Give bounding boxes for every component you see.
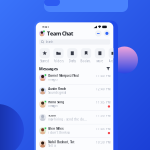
staticText: Hana Song	[48, 100, 64, 104]
button[interactable]: More	[94, 48, 106, 63]
staticText: (image)	[48, 78, 58, 81]
staticText: Messages	[39, 66, 58, 71]
button[interactable]: Folders	[53, 48, 64, 63]
button[interactable]: Compose	[104, 30, 110, 37]
button[interactable]: Daniel Marquez (You)	[36, 71, 113, 85]
staticText: Nabil Bashari, Tot	[48, 140, 74, 144]
button[interactable]: Archive	[108, 48, 119, 63]
button[interactable]: Austin Krach	[36, 85, 113, 98]
staticText: Search	[45, 40, 53, 44]
staticText: 11:45 PM	[96, 101, 110, 104]
button[interactable]: Nabil Bashari, Tot	[36, 138, 113, 150]
staticText: Archive	[109, 59, 119, 63]
staticText: 9:41	[42, 25, 49, 29]
staticText: 11:40 PM	[96, 74, 110, 78]
staticText: Drafts	[69, 59, 76, 63]
staticText: 11:45 PM	[96, 127, 110, 131]
staticText: 11:00 PM	[96, 114, 110, 117]
staticText: Starred	[40, 59, 49, 63]
button[interactable]: Ellen Miles	[36, 124, 113, 138]
staticText: Bookmarks	[80, 59, 92, 63]
button[interactable]: Team	[36, 111, 113, 124]
button[interactable]: Filter	[106, 67, 110, 70]
button[interactable]: Menu	[95, 30, 101, 37]
button[interactable]: Starred	[39, 48, 50, 63]
staticText: Sounds great	[48, 91, 66, 94]
staticText: More	[96, 59, 103, 63]
staticText: Tell it	[48, 144, 56, 148]
staticText: Team	[48, 114, 56, 117]
button[interactable]: Hana Song	[36, 98, 113, 111]
staticText: Ellen Miles	[48, 127, 63, 130]
staticText: Folders	[53, 59, 63, 63]
staticText: Team Chat	[47, 30, 73, 37]
staticText: i don't think so	[48, 131, 70, 134]
staticText: Austin Krach	[48, 87, 66, 91]
button[interactable]: Drafts	[67, 48, 78, 63]
staticText: (image)	[48, 104, 58, 108]
button[interactable]: Bookmarks	[80, 48, 92, 63]
button[interactable]: Search	[39, 39, 110, 45]
staticText: 12:40 PM	[96, 87, 110, 91]
staticText: Daniel Marquez (You)	[48, 74, 79, 77]
staticText: new hiring - send the do...	[48, 118, 87, 121]
staticText: 10:30 PM	[96, 141, 110, 144]
